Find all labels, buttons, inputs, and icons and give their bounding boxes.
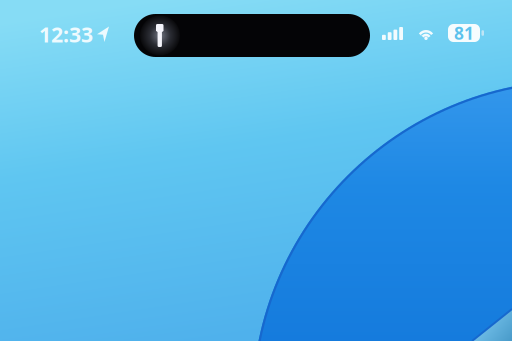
button[interactable]: Flashlight Live Activity xyxy=(134,14,370,57)
staticText: 81 xyxy=(454,21,474,44)
staticText: 12:33 xyxy=(39,20,93,48)
